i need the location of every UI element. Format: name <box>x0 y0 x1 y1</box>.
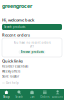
button[interactable]: Orders <box>38 89 51 100</box>
staticText: Reorder essentials <box>2 65 28 68</box>
staticText: Store locator <box>2 75 19 78</box>
staticText: yet <box>30 44 34 48</box>
button[interactable]: Cart <box>26 89 38 100</box>
staticText: Shop <box>3 95 10 99</box>
staticText: Quick links <box>2 58 23 64</box>
button[interactable]: Weekly offers <box>0 69 64 74</box>
staticText: Account <box>52 95 63 99</box>
button[interactable]: Search <box>13 89 26 100</box>
staticText: greengrocer <box>2 2 32 10</box>
staticText: Hi, welcome back <box>2 17 34 23</box>
button[interactable]: Search products <box>2 24 62 30</box>
button[interactable]: Browse products <box>18 50 45 54</box>
staticText: You have no recent orders <box>13 41 50 44</box>
button[interactable]: Reorder essentials <box>0 64 64 69</box>
staticText: Recent orders <box>2 32 30 38</box>
button[interactable]: Shop <box>0 89 13 100</box>
staticText: Browse products <box>20 50 43 54</box>
staticText: Orders <box>40 95 49 99</box>
button[interactable]: Get help <box>0 81 64 85</box>
button[interactable]: Store locator <box>0 74 64 79</box>
staticText: Get help <box>6 81 19 85</box>
staticText: Search products <box>4 25 25 29</box>
staticText: Weekly offers <box>2 70 20 73</box>
staticText: Search <box>15 95 23 99</box>
button[interactable]: Account <box>51 89 64 100</box>
staticText: Cart <box>29 95 34 99</box>
